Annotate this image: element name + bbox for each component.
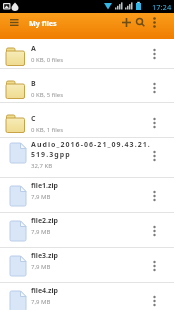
button[interactable] [3, 13, 25, 32]
staticText: 0 KB, 5 files [31, 91, 64, 99]
staticText: C [31, 114, 36, 124]
staticText: B [31, 79, 36, 89]
button[interactable] [154, 69, 174, 103]
staticText: My files [29, 18, 57, 28]
staticText: 7,9 MB [31, 263, 51, 271]
button[interactable]: file2.zip [0, 213, 174, 248]
button[interactable] [147, 13, 161, 32]
button[interactable] [154, 39, 174, 69]
button[interactable] [154, 178, 174, 213]
button[interactable] [154, 103, 174, 138]
button[interactable]: C [0, 103, 174, 138]
staticText: file3.zip [31, 251, 58, 261]
staticText: file1.zip [31, 181, 58, 191]
button[interactable]: file4.zip [0, 283, 174, 310]
staticText: 32,7 KB [31, 162, 53, 170]
button[interactable]: file1.zip [0, 178, 174, 213]
button[interactable]: A [0, 39, 174, 69]
button[interactable] [154, 283, 174, 310]
staticText: A [31, 44, 36, 54]
button[interactable]: B [0, 69, 174, 103]
button[interactable]: Audio_2016-06-21_09.43.21. 519.3gpp [0, 138, 174, 178]
button[interactable] [154, 138, 174, 178]
staticText: 7,9 MB [31, 193, 51, 201]
staticText: 7,9 MB [31, 298, 51, 306]
staticText: Audio_2016-06-21_09.43.21. 519.3gpp [31, 140, 151, 160]
staticText: 17:24 [152, 2, 172, 12]
button[interactable] [119, 13, 133, 32]
staticText: file4.zip [31, 286, 58, 296]
staticText: 7,9 MB [31, 228, 51, 236]
button[interactable] [133, 13, 147, 32]
button[interactable] [154, 248, 174, 283]
staticText: 0 KB, 1 files [31, 126, 64, 134]
staticText: file2.zip [31, 216, 58, 226]
button[interactable]: file3.zip [0, 248, 174, 283]
staticText: 0 KB, 0 files [31, 56, 64, 64]
button[interactable] [154, 213, 174, 248]
